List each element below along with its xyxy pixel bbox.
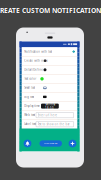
staticText: Saturday 18:50 (45, 103, 55, 110)
staticText: Detail/Define (24, 68, 43, 71)
button[interactable] (22, 101, 77, 111)
button[interactable] (22, 65, 77, 74)
button[interactable]: Notifications (24, 140, 31, 147)
button[interactable]: Send local Notification (39, 140, 62, 147)
button[interactable]: Add (69, 140, 76, 147)
button[interactable] (22, 83, 77, 92)
button[interactable] (22, 56, 77, 65)
staticText: Display time (24, 104, 40, 108)
staticText: Notification with text (24, 50, 52, 53)
staticText: CREATE CUSTOM NOTIFICATIONS (0, 6, 101, 15)
button[interactable] (22, 111, 77, 120)
button[interactable] (22, 120, 77, 129)
staticText: Text to show on the bar (38, 122, 70, 126)
staticText: Web text (24, 113, 35, 117)
button[interactable] (22, 92, 77, 102)
button[interactable] (22, 47, 77, 56)
button[interactable] (22, 74, 77, 83)
staticText: Enter url here (38, 113, 58, 117)
staticText: Label text (24, 122, 36, 126)
button[interactable]: CREATE CUSTOM NOTIFICATIONS (0, 6, 101, 14)
staticText: Text color (24, 77, 36, 80)
staticText: Small text (24, 86, 35, 89)
staticText: Send local Notification (44, 143, 58, 144)
staticText: Create with name (24, 59, 48, 62)
staticText: Big text (24, 95, 34, 99)
